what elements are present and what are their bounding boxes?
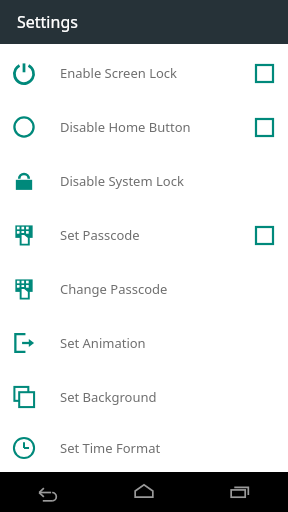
staticText: Enable Screen Lock [60, 64, 178, 82]
staticText: Change Passcode [60, 280, 168, 298]
button[interactable]: Set Background [0, 370, 288, 424]
button[interactable]: Disable Home Button [0, 100, 288, 154]
button[interactable]: Enable Screen Lock [0, 46, 288, 100]
staticText: Settings [17, 11, 78, 33]
button[interactable]: Set Time Format [0, 424, 288, 472]
button[interactable]: Enable Screen Lock checkbox [240, 46, 288, 100]
button[interactable]: Back [0, 472, 96, 512]
button[interactable]: Disable System Lock [0, 154, 288, 208]
staticText: Set Time Format [60, 439, 161, 457]
staticText: Disable System Lock [60, 172, 184, 190]
staticText: Set Passcode [60, 226, 140, 244]
button[interactable]: Change Passcode [0, 262, 288, 316]
button[interactable]: Set Passcode [0, 208, 288, 262]
staticText: Set Background [60, 388, 157, 406]
button[interactable]: Recents [192, 472, 288, 512]
button[interactable]: Disable Home Button checkbox [240, 100, 288, 154]
button[interactable]: Set Passcode checkbox [240, 208, 288, 262]
button[interactable]: Set Animation [0, 316, 288, 370]
button[interactable]: Home [96, 472, 192, 512]
staticText: Set Animation [60, 334, 146, 352]
staticText: Disable Home Button [60, 118, 191, 136]
